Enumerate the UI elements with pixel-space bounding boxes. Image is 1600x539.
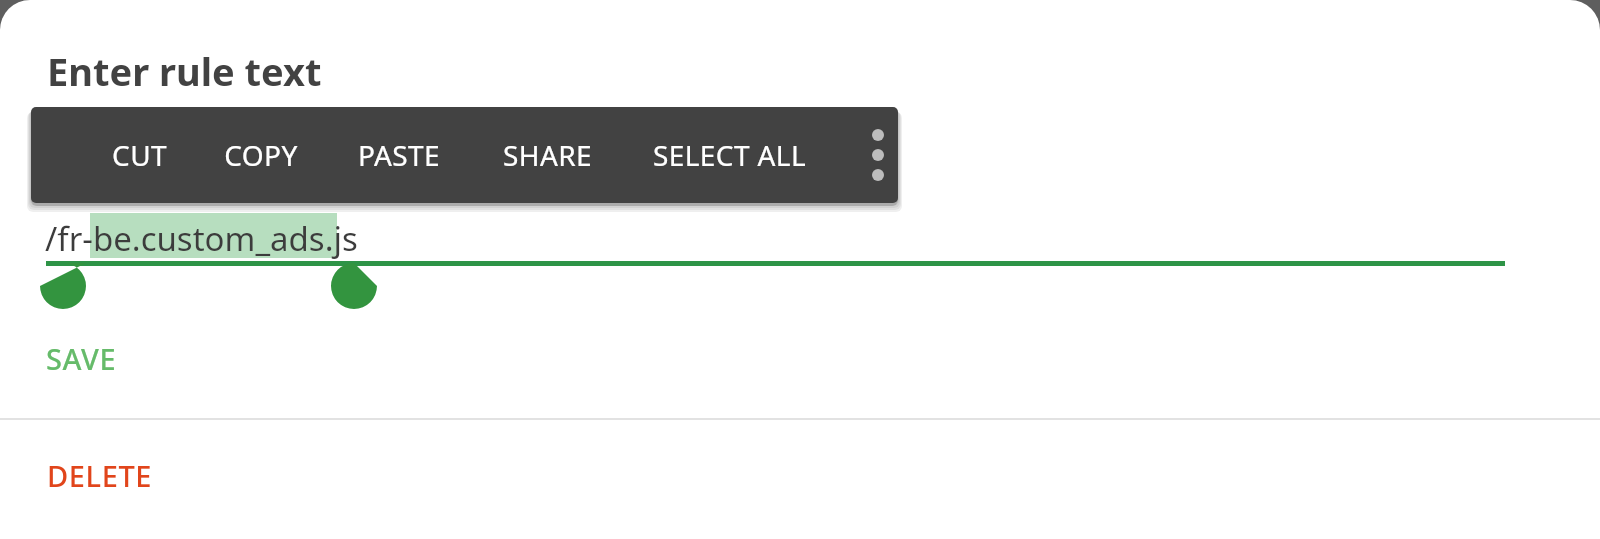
staticText: PASTE bbox=[358, 136, 440, 174]
button[interactable]: COPY bbox=[193, 107, 329, 203]
button[interactable]: PASTE bbox=[327, 107, 471, 203]
button[interactable]: SELECT ALL bbox=[622, 107, 837, 203]
staticText: SHARE bbox=[503, 136, 592, 174]
other: Selection start handle bbox=[40, 257, 100, 309]
button[interactable]: SAVE bbox=[28, 325, 135, 392]
button[interactable]: CUT bbox=[81, 107, 198, 203]
other: Selection end handle bbox=[331, 257, 391, 309]
staticText: /fr-be.custom_ads.js bbox=[45, 216, 358, 261]
button[interactable]: DELETE bbox=[29, 442, 171, 509]
staticText: CUT bbox=[112, 136, 167, 174]
button[interactable]: More options bbox=[845, 107, 898, 203]
button[interactable]: SHARE bbox=[472, 107, 623, 203]
staticText: DELETE bbox=[47, 456, 153, 495]
staticText: SAVE bbox=[46, 339, 117, 378]
staticText: SELECT ALL bbox=[653, 136, 806, 174]
staticText: Enter rule text bbox=[47, 45, 322, 97]
staticText: COPY bbox=[224, 136, 298, 174]
